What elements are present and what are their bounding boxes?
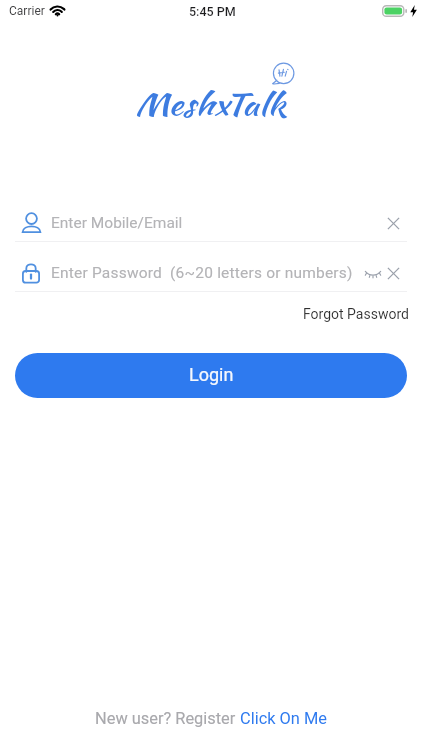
staticText: 5:45 PM [189,4,236,19]
button[interactable]: Forgot Password [301,303,411,325]
button[interactable]: Login [15,353,407,398]
staticText: Forgot Password [303,306,409,322]
staticText: New user? Register [95,709,240,728]
staticText: Enter Mobile/Email [51,214,183,232]
staticText: Login [189,364,234,385]
button[interactable]: Clear [383,213,403,233]
button[interactable]: Enter Mobile/Email [15,199,407,241]
staticText: MeshxTalk [135,84,287,126]
button[interactable]: Show password [363,263,383,283]
button[interactable]: Enter Password (6~20 letters or numbers) [15,249,407,291]
staticText: Click On Me [240,709,327,728]
staticText: Carrier [9,4,45,18]
button[interactable]: Clear [383,263,403,283]
button[interactable]: Click On Me [240,709,327,728]
staticText: Enter Password (6~20 letters or numbers) [51,264,353,282]
